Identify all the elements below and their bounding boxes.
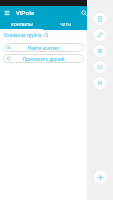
staticText: Найти контакт xyxy=(28,45,60,51)
button[interactable]: Найти контакт xyxy=(3,43,84,52)
staticText: ЧАТЫ xyxy=(60,22,71,27)
button[interactable]: Security xyxy=(100,7,112,19)
button[interactable]: Storage xyxy=(94,45,106,57)
staticText: Пригласить друзей xyxy=(23,56,65,62)
button[interactable]: КОНТАКТЫ xyxy=(0,19,43,30)
staticText: VIPole xyxy=(16,9,35,17)
button[interactable]: Contacts xyxy=(94,13,106,25)
button[interactable]: Notes xyxy=(94,77,106,89)
button[interactable]: Menu xyxy=(0,6,13,19)
staticText: КОНТАКТЫ xyxy=(11,22,33,27)
button[interactable]: Search xyxy=(78,7,89,18)
button[interactable]: Transfer xyxy=(94,29,106,41)
button[interactable]: ЧАТЫ xyxy=(43,19,87,30)
staticText: Основная группа - 0 xyxy=(4,32,48,38)
button[interactable]: Notifications xyxy=(89,7,100,18)
button[interactable]: Пригласить друзей xyxy=(3,54,84,63)
button[interactable]: Add xyxy=(94,171,107,184)
button[interactable]: Files xyxy=(94,61,106,73)
button[interactable]: Основная группа - 0 xyxy=(0,30,113,40)
